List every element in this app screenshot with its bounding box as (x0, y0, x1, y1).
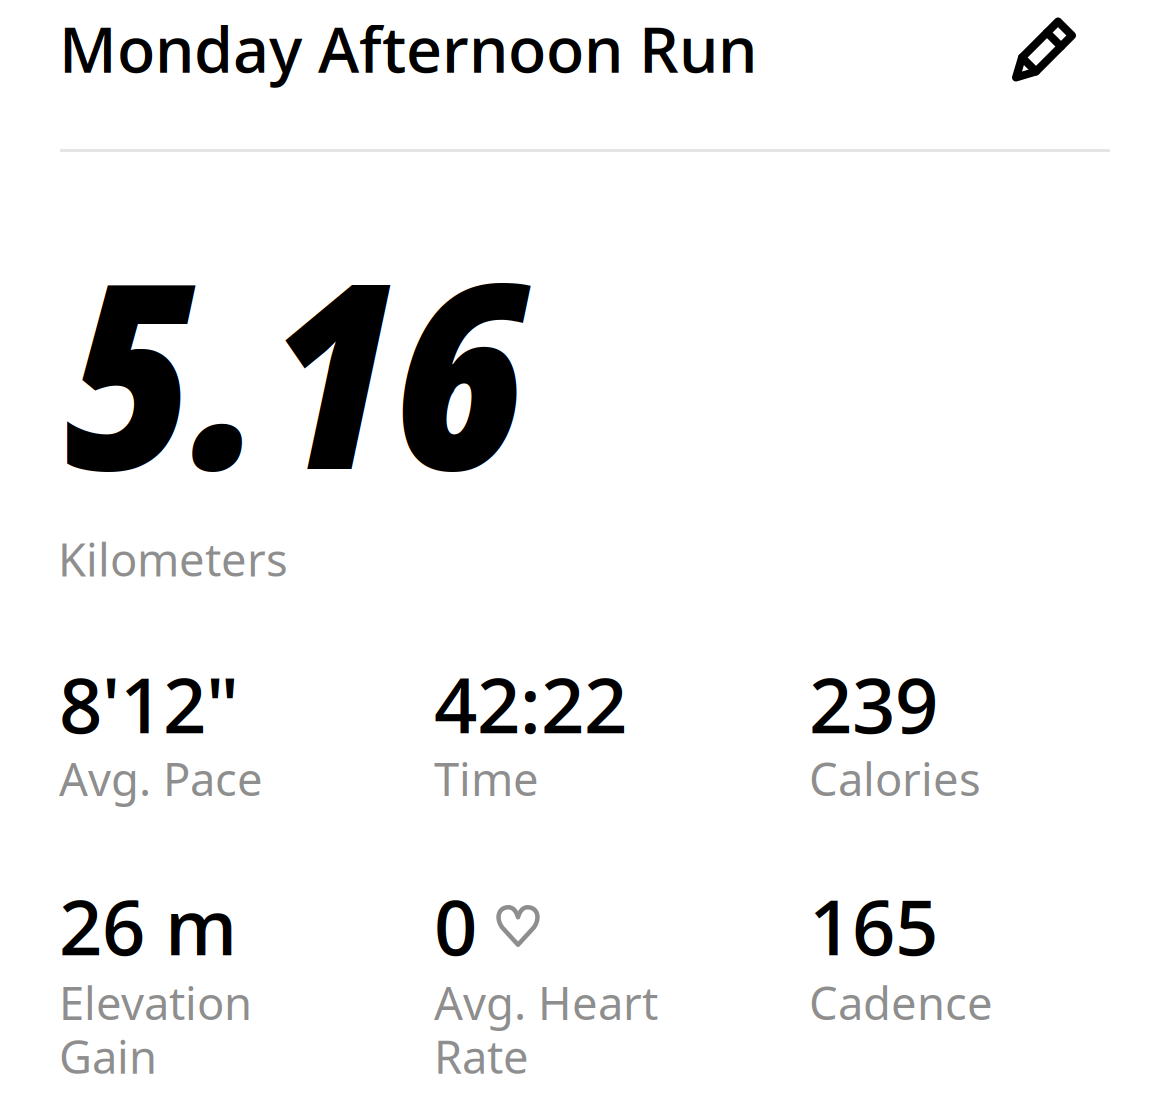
staticText: Avg. Heart (434, 971, 658, 1033)
staticText: 26 m (59, 874, 237, 977)
staticText: 42:22 (434, 652, 627, 755)
button[interactable]: Edit activity (1008, 11, 1082, 85)
staticText: 165 (809, 874, 938, 977)
staticText: Cadence (809, 971, 993, 1033)
staticText: 5.16 (63, 194, 524, 544)
staticText: 0 (434, 874, 477, 977)
staticText: Elevation (59, 971, 252, 1033)
staticText: Calories (809, 747, 981, 809)
staticText: Time (434, 747, 539, 809)
staticText: 8'12" (59, 652, 239, 755)
staticText: Gain (59, 1025, 157, 1087)
staticText: Kilometers (58, 528, 288, 590)
staticText: 239 (809, 652, 938, 755)
staticText: Monday Afternoon Run (59, 6, 757, 91)
staticText: Avg. Pace (59, 747, 263, 809)
staticText: Rate (434, 1025, 529, 1087)
